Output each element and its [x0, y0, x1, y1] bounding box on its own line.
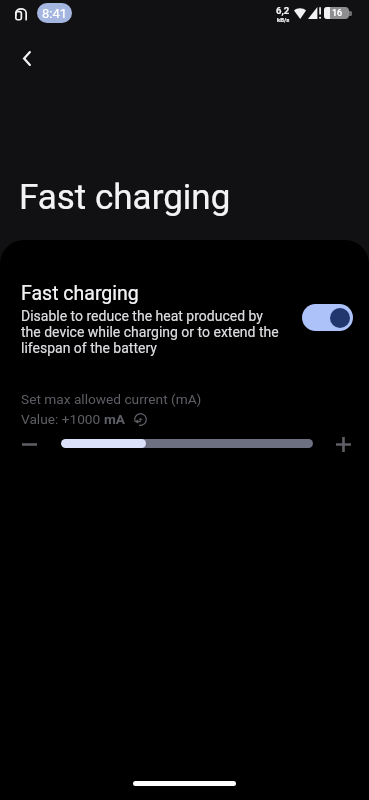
staticText: 8:41	[42, 6, 68, 21]
staticText: 6,2	[276, 5, 290, 16]
button[interactable]: Increase	[326, 427, 360, 461]
staticText: Fast charging	[19, 177, 231, 218]
staticText: Fast charging	[21, 282, 139, 305]
staticText: 16	[332, 8, 343, 19]
button[interactable]: Fast charging toggle	[302, 304, 353, 331]
staticText: Value: +1000	[21, 411, 104, 427]
staticText: Set max allowed current (mA)	[21, 391, 202, 407]
button[interactable]: Reset to default	[134, 413, 147, 426]
button[interactable]: Back	[7, 38, 47, 78]
button[interactable]: Fast charging	[0, 282, 369, 356]
button[interactable]: Max current slider	[61, 439, 313, 448]
staticText: mA	[104, 411, 126, 427]
staticText: kB/s	[277, 16, 290, 23]
button[interactable]: Decrease	[12, 427, 46, 461]
staticText: Disable to reduce the heat produced by t…	[21, 308, 283, 356]
